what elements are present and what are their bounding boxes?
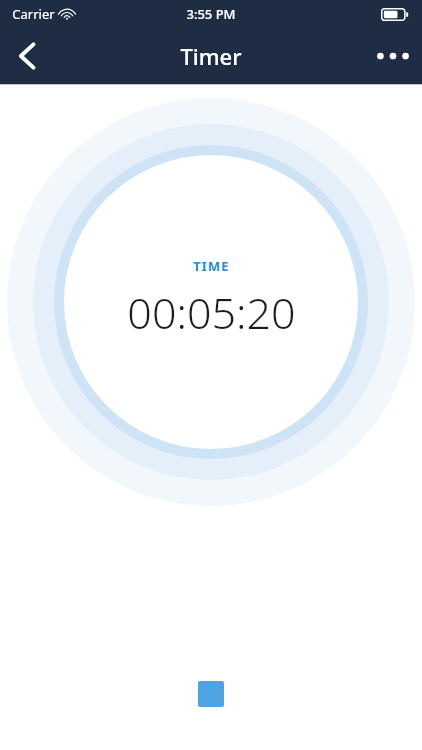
staticText: Timer [180,41,242,71]
staticText: TIME [193,257,230,275]
button[interactable]: Stop timer [188,671,234,717]
staticText: 00:05:20 [127,283,296,342]
staticText: Carrier [12,5,55,23]
button[interactable]: More options [364,28,422,84]
staticText: 3:55 PM [186,5,236,23]
button[interactable]: Back [0,28,54,84]
